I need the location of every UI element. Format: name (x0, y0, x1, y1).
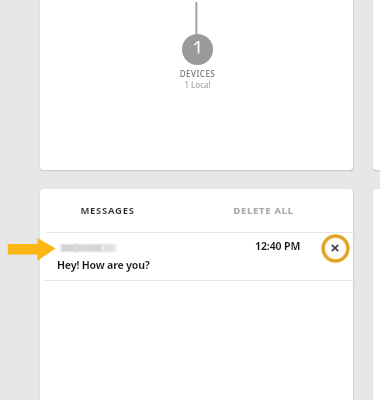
staticText: 12:40 PM (255, 239, 301, 253)
staticText: MESSAGES (80, 204, 135, 217)
staticText: DEVICES (41, 68, 354, 79)
button[interactable]: MESSAGES (40, 189, 174, 232)
staticText: Hey! How are you? (57, 258, 150, 272)
button[interactable]: Hey! How are you? (40, 233, 353, 280)
button[interactable]: DELETE ALL (174, 189, 353, 232)
button[interactable]: 1 device (182, 34, 213, 65)
button[interactable]: Delete message (323, 236, 347, 260)
staticText: DELETE ALL (233, 204, 294, 217)
staticText: 1 Local (41, 79, 354, 90)
